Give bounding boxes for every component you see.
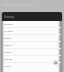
staticText: Storage <box>4 58 13 61</box>
button[interactable]: Sound <box>2 49 62 56</box>
staticText: Privacy <box>4 37 12 40</box>
button[interactable]: About <box>2 63 62 70</box>
button[interactable]: Display <box>2 42 62 49</box>
button[interactable]: Add <box>53 60 58 65</box>
staticText: Account <box>4 30 13 33</box>
staticText: Sound <box>4 51 11 54</box>
staticText: Settings <box>4 15 14 19</box>
button[interactable]: General <box>2 21 62 28</box>
staticText: Display <box>4 44 12 47</box>
staticText: General <box>4 23 13 26</box>
button[interactable]: Account <box>2 28 62 35</box>
button[interactable]: Privacy <box>2 35 62 42</box>
button[interactable]: Storage <box>2 56 62 63</box>
staticText: About <box>4 65 11 68</box>
button[interactable]: Settings <box>2 12 62 21</box>
staticText: change your preferences <box>3 3 34 7</box>
